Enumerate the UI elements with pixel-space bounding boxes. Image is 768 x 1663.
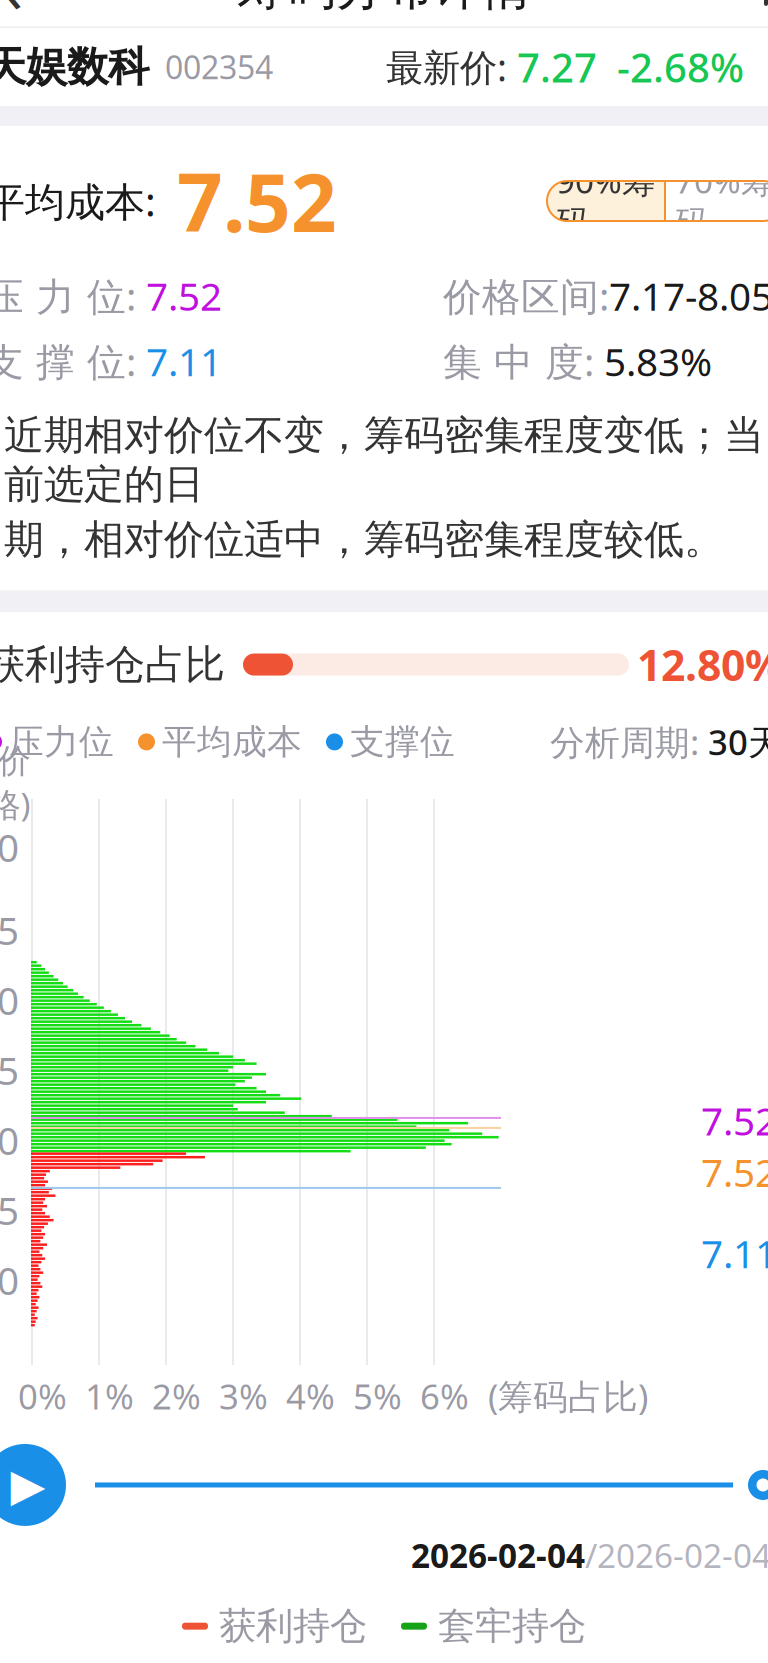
staticText: 5% (353, 1373, 402, 1419)
staticText: 0% (18, 1373, 67, 1419)
staticText: 7.52 (156, 148, 337, 254)
staticText: 期，相对价位适中，筹码密集程度较低。 (4, 515, 724, 564)
staticText: 6.5 (0, 1184, 19, 1235)
staticText: 7.5 (0, 1044, 19, 1095)
staticText: 9.0 (0, 821, 19, 872)
staticText: 7.27 -2.68% (517, 40, 744, 93)
staticText: 6% (420, 1373, 469, 1419)
staticText: 近期相对价位不变，筹码密集程度变低；当前选定的日 (4, 411, 764, 509)
staticText: 30天 (708, 719, 768, 765)
staticText: 7.0 (0, 1114, 19, 1165)
staticText: 8.0 (0, 974, 19, 1025)
staticText: 2% (152, 1373, 201, 1419)
staticText: 分析周期: (550, 719, 708, 765)
staticText: 天娱数科 (0, 41, 149, 92)
staticText: 3% (219, 1373, 268, 1419)
staticText: 平均成本 (162, 721, 302, 763)
staticText: (价格) (0, 738, 30, 826)
staticText: 最新价: (386, 42, 517, 92)
staticText: 90%筹码 (556, 158, 655, 244)
staticText: 7.11 (146, 335, 222, 387)
staticText: ‹ (2, 0, 23, 32)
staticText: 压力位 (9, 721, 114, 763)
staticText: 7.11 (701, 1228, 768, 1279)
staticText: 获利持仓 (208, 1603, 367, 1649)
staticText: 7.17-8.05 (609, 270, 768, 321)
staticText: /2026-02-04 (585, 1533, 768, 1577)
staticText: 70%筹码 (675, 158, 768, 244)
staticText: ▶ (10, 1459, 45, 1511)
staticText: 7.52 (701, 1146, 768, 1198)
staticText: 支撑位 (350, 721, 455, 763)
staticText: 1% (85, 1373, 134, 1419)
staticText: 支 撑 位: (0, 335, 146, 387)
staticText: 套牢持仓 (427, 1603, 586, 1649)
staticText: 2026-02-04 (411, 1533, 585, 1577)
button[interactable]: Play (0, 1439, 71, 1531)
staticText: 7.52 (701, 1095, 768, 1146)
staticText: 压 力 位: (0, 270, 146, 321)
staticText: 5.83% (604, 335, 712, 387)
button[interactable]: Back (0, 0, 51, 25)
staticText: 筹码分布详情 (237, 0, 531, 18)
staticText: 4% (286, 1373, 335, 1419)
staticText: 6.0 (0, 1254, 19, 1305)
staticText: 获利持仓占比 (0, 640, 225, 689)
staticText: 集 中 度: (443, 335, 604, 387)
staticText: 8.5 (0, 904, 19, 955)
staticText: 平均成本: (0, 174, 156, 228)
staticText: 002354 (149, 46, 273, 88)
button[interactable]: 90%筹码 (547, 181, 664, 221)
staticText: 价格区间: (443, 270, 609, 321)
staticText: (筹码占比) (488, 1373, 648, 1419)
button[interactable]: 70%筹码 (666, 181, 768, 221)
staticText: 12.80% (637, 636, 768, 693)
staticText: 7.52 (146, 270, 222, 321)
button[interactable]: 天娱数科 (0, 28, 768, 106)
button[interactable]: Search (717, 0, 768, 25)
